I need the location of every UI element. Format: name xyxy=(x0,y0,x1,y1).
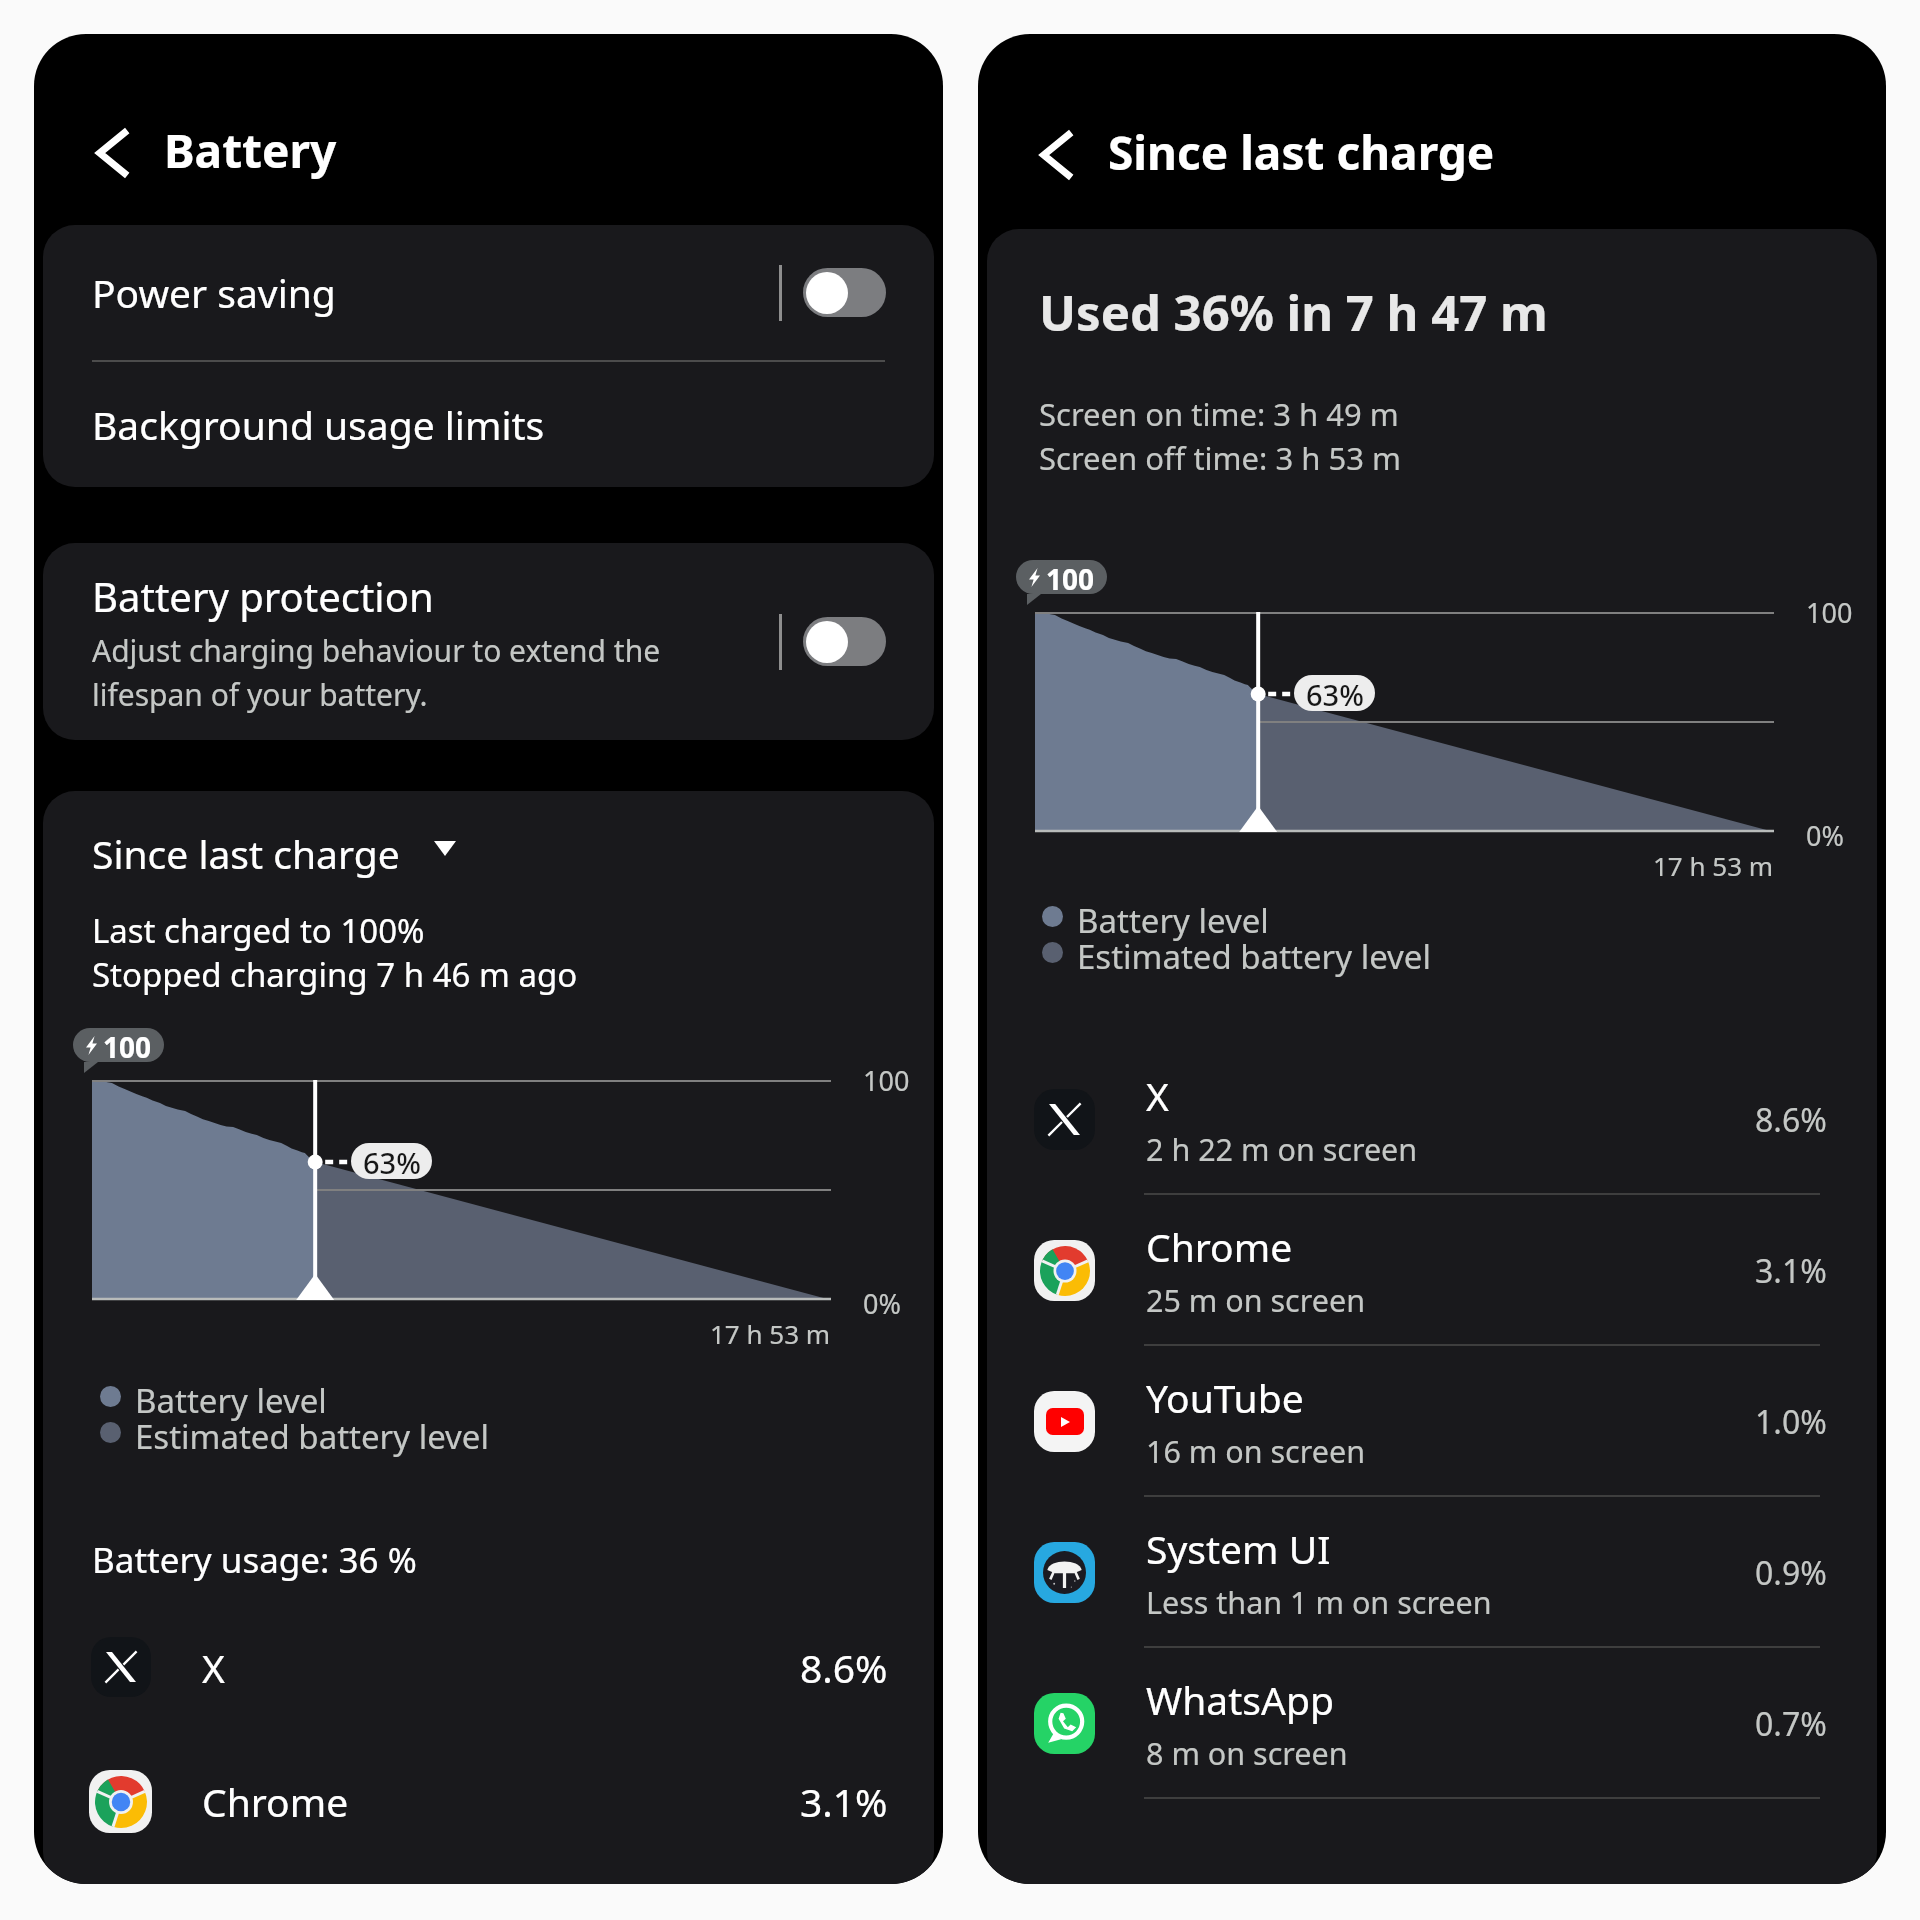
button[interactable]: System UI xyxy=(987,1497,1877,1648)
staticText: 16 m on screen xyxy=(1146,1430,1365,1472)
staticText: System UI xyxy=(1146,1522,1331,1575)
staticText: 1.0% xyxy=(1755,1400,1827,1444)
staticText: 0% xyxy=(863,1285,901,1322)
staticText: 63% xyxy=(1306,675,1364,711)
staticText: Chrome xyxy=(1146,1220,1293,1273)
staticText: Since last charge xyxy=(1108,121,1495,184)
staticText: 8.6% xyxy=(800,1641,888,1694)
button[interactable]: X xyxy=(43,1600,934,1734)
staticText: 8.6% xyxy=(1755,1098,1827,1142)
staticText: 0.7% xyxy=(1755,1702,1827,1746)
staticText: 17 h 53 m xyxy=(710,1316,831,1351)
staticText: 100 xyxy=(863,1062,910,1099)
staticText: 2 h 22 m on screen xyxy=(1146,1128,1418,1170)
button[interactable]: Chrome xyxy=(987,1195,1877,1346)
button[interactable]: Power saving toggle xyxy=(803,268,886,317)
staticText: WhatsApp xyxy=(1146,1673,1334,1726)
staticText: 0% xyxy=(1806,817,1844,854)
staticText: 17 h 53 m xyxy=(1653,848,1774,883)
staticText: Used 36% in 7 h 47 m xyxy=(1039,279,1548,346)
staticText: X xyxy=(202,1641,225,1694)
staticText: Screen on time: 3 h 49 m Screen off time… xyxy=(1039,391,1401,479)
button[interactable]: Chrome xyxy=(43,1734,934,1868)
staticText: Last charged to 100% Stopped charging 7 … xyxy=(92,908,578,996)
staticText: 63% xyxy=(363,1143,421,1179)
button[interactable]: WhatsApp xyxy=(987,1648,1877,1799)
staticText: Battery usage: 36 % xyxy=(92,1536,417,1584)
button[interactable]: Battery protection xyxy=(43,543,934,740)
staticText: X xyxy=(1146,1069,1169,1122)
button[interactable]: Back xyxy=(96,130,142,176)
staticText: 100 xyxy=(1806,594,1853,631)
staticText: Power saving xyxy=(92,266,336,319)
staticText: Background usage limits xyxy=(92,398,545,451)
button[interactable]: Background usage limits xyxy=(43,362,934,487)
staticText: 3.1% xyxy=(1755,1249,1827,1293)
staticText: 0.9% xyxy=(1755,1551,1827,1595)
button[interactable]: X xyxy=(987,1044,1877,1195)
staticText: Estimated battery level xyxy=(1077,934,1431,979)
staticText: Since last charge xyxy=(92,827,400,880)
staticText: Battery protection xyxy=(92,569,434,623)
staticText: 3.1% xyxy=(800,1775,888,1828)
staticText: Chrome xyxy=(202,1775,349,1828)
button[interactable]: Back xyxy=(1040,132,1086,178)
staticText: Battery xyxy=(164,119,337,182)
staticText: 8 m on screen xyxy=(1146,1732,1348,1774)
button[interactable]: Battery protection toggle xyxy=(803,617,886,666)
button[interactable]: Since last charge xyxy=(92,827,456,880)
staticText: 100 xyxy=(103,1028,152,1062)
staticText: Battery level xyxy=(1077,898,1269,943)
staticText: 25 m on screen xyxy=(1146,1279,1365,1321)
staticText: YouTube xyxy=(1146,1371,1304,1424)
button[interactable]: YouTube xyxy=(987,1346,1877,1497)
staticText: Estimated battery level xyxy=(135,1414,489,1459)
staticText: 100 xyxy=(1046,560,1095,594)
staticText: Battery level xyxy=(135,1378,327,1423)
button[interactable]: Power saving xyxy=(43,225,934,360)
staticText: Less than 1 m on screen xyxy=(1146,1581,1492,1623)
staticText: Adjust charging behaviour to extend the … xyxy=(92,627,661,715)
